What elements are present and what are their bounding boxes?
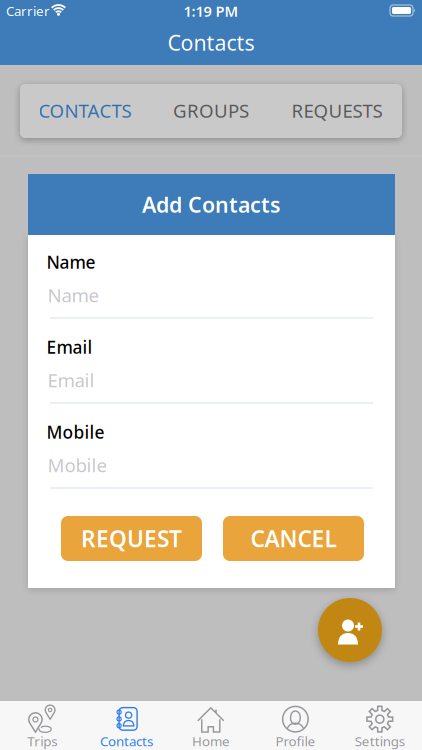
- staticText: Add Contacts: [142, 190, 281, 219]
- staticText: Name: [47, 283, 99, 307]
- staticText: Settings: [355, 732, 405, 750]
- button[interactable]: GROUPS: [163, 83, 259, 137]
- staticText: CANCEL: [250, 523, 336, 553]
- staticText: Email: [46, 335, 92, 358]
- button[interactable]: Trips: [0, 699, 84, 750]
- staticText: Email: [47, 368, 94, 392]
- button[interactable]: Profile: [253, 699, 338, 750]
- staticText: Name: [46, 250, 95, 273]
- staticText: GROUPS: [173, 98, 249, 123]
- button[interactable]: CONTACTS: [30, 83, 140, 137]
- button[interactable]: Add Contact: [318, 598, 382, 662]
- staticText: Contacts: [167, 28, 254, 57]
- button[interactable]: Home: [169, 699, 253, 750]
- staticText: REQUESTS: [291, 98, 382, 123]
- staticText: 1:19 PM: [183, 1, 238, 21]
- staticText: Mobile: [47, 453, 107, 477]
- staticText: Contacts: [100, 732, 153, 750]
- staticText: Mobile: [46, 420, 104, 443]
- button[interactable]: Contacts: [84, 699, 169, 750]
- staticText: REQUEST: [81, 523, 182, 553]
- staticText: Trips: [27, 732, 57, 750]
- staticText: Profile: [275, 732, 315, 750]
- button[interactable]: CANCEL: [223, 516, 364, 561]
- staticText: Home: [192, 732, 230, 750]
- staticText: CONTACTS: [38, 98, 131, 123]
- staticText: Carrier: [6, 2, 50, 20]
- button[interactable]: REQUESTS: [282, 83, 392, 137]
- button[interactable]: Settings: [338, 699, 422, 750]
- button[interactable]: REQUEST: [61, 516, 202, 561]
